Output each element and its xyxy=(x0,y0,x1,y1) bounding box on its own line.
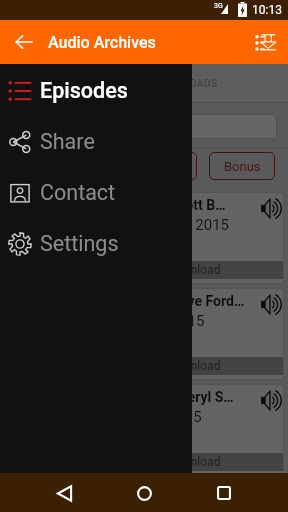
button[interactable]: All xyxy=(143,152,197,180)
staticText: Saturday, November 11, 2015 xyxy=(10,312,205,330)
button[interactable]: Home xyxy=(126,475,162,511)
button[interactable]: Recent apps xyxy=(206,475,242,511)
staticText: Added Wednesday, May 26, 2015 xyxy=(10,216,230,234)
button[interactable]: Episode 8: Interview with Cheryl Sanders xyxy=(4,384,284,476)
button[interactable]: Show 118: Our chat with Steve Fordham xyxy=(4,288,284,380)
button[interactable]: Navigate up xyxy=(7,25,41,59)
button[interactable]: Play xyxy=(255,386,283,414)
staticText: Bonus xyxy=(224,159,261,174)
staticText: Episodes xyxy=(40,78,128,103)
button[interactable]: Play xyxy=(255,194,283,222)
staticText: DOWNLOADS xyxy=(152,78,218,90)
staticText: Share xyxy=(40,129,95,154)
button[interactable]: Settings xyxy=(0,218,192,269)
staticText: 10:13 xyxy=(252,3,282,17)
staticText: Download xyxy=(167,455,221,469)
staticText: Episode 8: Interview with Cheryl Sanders xyxy=(10,389,236,405)
staticText: Settings xyxy=(40,231,119,256)
staticText: Episode 8: A talk with Dr. Scott Bradley xyxy=(10,197,226,213)
button[interactable]: Download xyxy=(6,261,283,279)
button[interactable]: Bonus xyxy=(209,152,275,180)
staticText: Tuesday, November 11, 2015 xyxy=(10,408,202,426)
button[interactable]: Episode 8: A talk with Dr. Scott Bradley xyxy=(4,192,284,284)
button[interactable]: Download all episodes xyxy=(248,25,282,59)
button[interactable]: Back xyxy=(46,475,82,511)
staticText: Show 118: Our chat with Steve Fordham xyxy=(10,293,246,309)
staticText: 3G xyxy=(214,2,223,10)
button[interactable]: Share xyxy=(0,116,192,167)
button[interactable]: Download xyxy=(6,357,283,375)
button[interactable] xyxy=(10,114,277,139)
button[interactable]: Contact xyxy=(0,167,192,218)
staticText: Download xyxy=(167,263,221,277)
button[interactable]: Episodes xyxy=(0,64,192,512)
button[interactable]: Episodes xyxy=(0,65,192,116)
button[interactable]: Download xyxy=(6,453,283,471)
button[interactable]: Play xyxy=(255,290,283,318)
staticText: Download xyxy=(167,359,221,373)
staticText: Contact xyxy=(40,180,116,205)
staticText: Audio Archives xyxy=(48,33,156,52)
